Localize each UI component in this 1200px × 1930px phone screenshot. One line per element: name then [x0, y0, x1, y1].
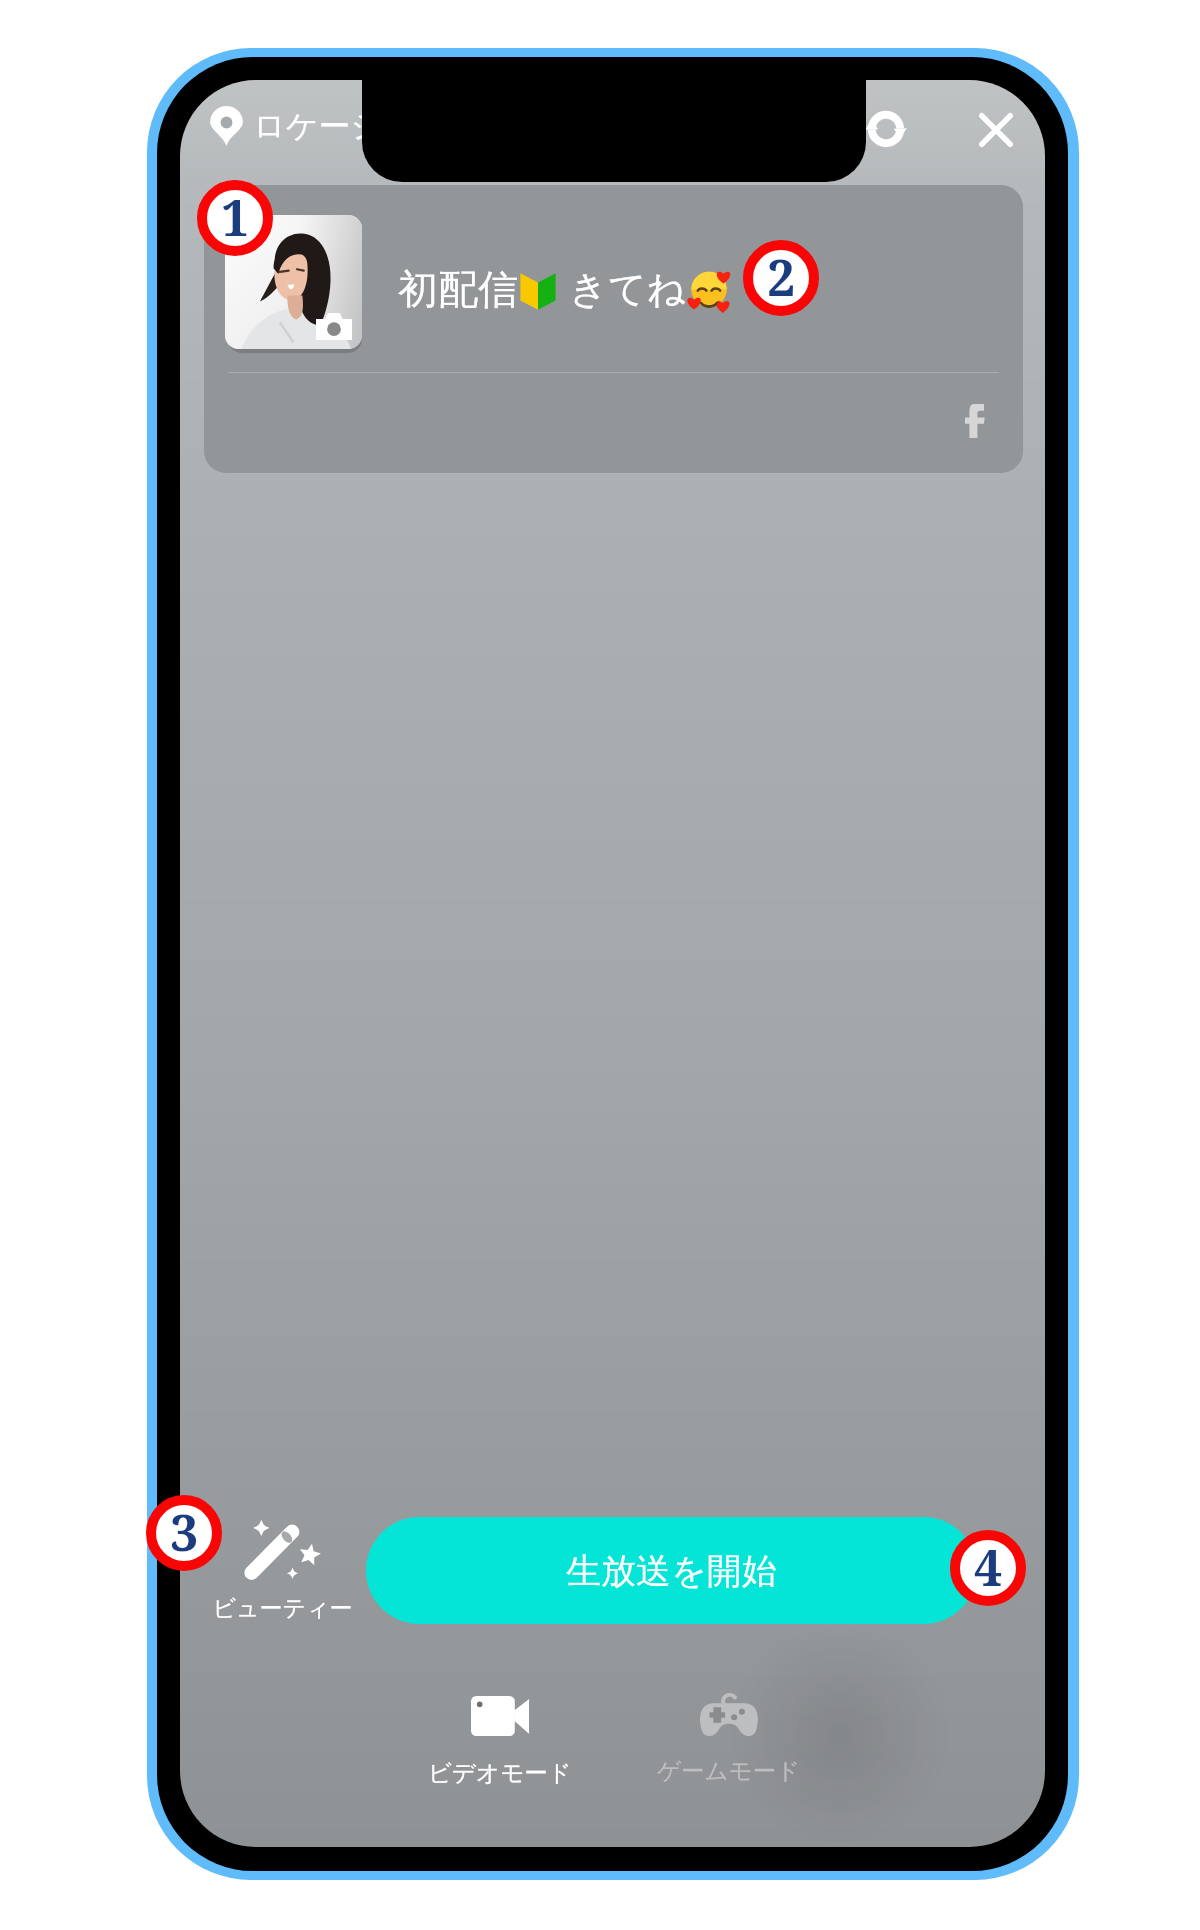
button[interactable]: 生放送を開始 — [366, 1517, 977, 1624]
staticText: ゲームモード — [657, 1756, 801, 1786]
button[interactable]: Close — [958, 92, 1034, 168]
staticText: ロケーション — [253, 106, 449, 146]
staticText: 4 — [974, 1533, 1003, 1601]
staticText: ビデオモード — [428, 1758, 572, 1788]
staticText: きてね — [569, 265, 686, 313]
staticText: 生放送を開始 — [566, 1549, 777, 1593]
button[interactable]: ビューティー — [202, 1518, 362, 1623]
staticText: 3 — [170, 1498, 199, 1566]
staticText: 2 — [767, 243, 796, 311]
button[interactable]: Change thumbnail — [225, 215, 362, 349]
button[interactable]: 初配信 — [384, 235, 964, 331]
button[interactable]: Switch camera — [848, 91, 924, 167]
staticText: 初配信 — [398, 264, 518, 314]
staticText: 1 — [221, 183, 250, 251]
button[interactable]: ゲームモード — [639, 1694, 819, 1786]
button[interactable]: Share to Facebook — [944, 390, 1006, 452]
button[interactable]: ロケーション — [206, 102, 453, 150]
staticText: ビューティー — [212, 1594, 353, 1623]
button[interactable]: ビデオモード — [410, 1696, 590, 1788]
